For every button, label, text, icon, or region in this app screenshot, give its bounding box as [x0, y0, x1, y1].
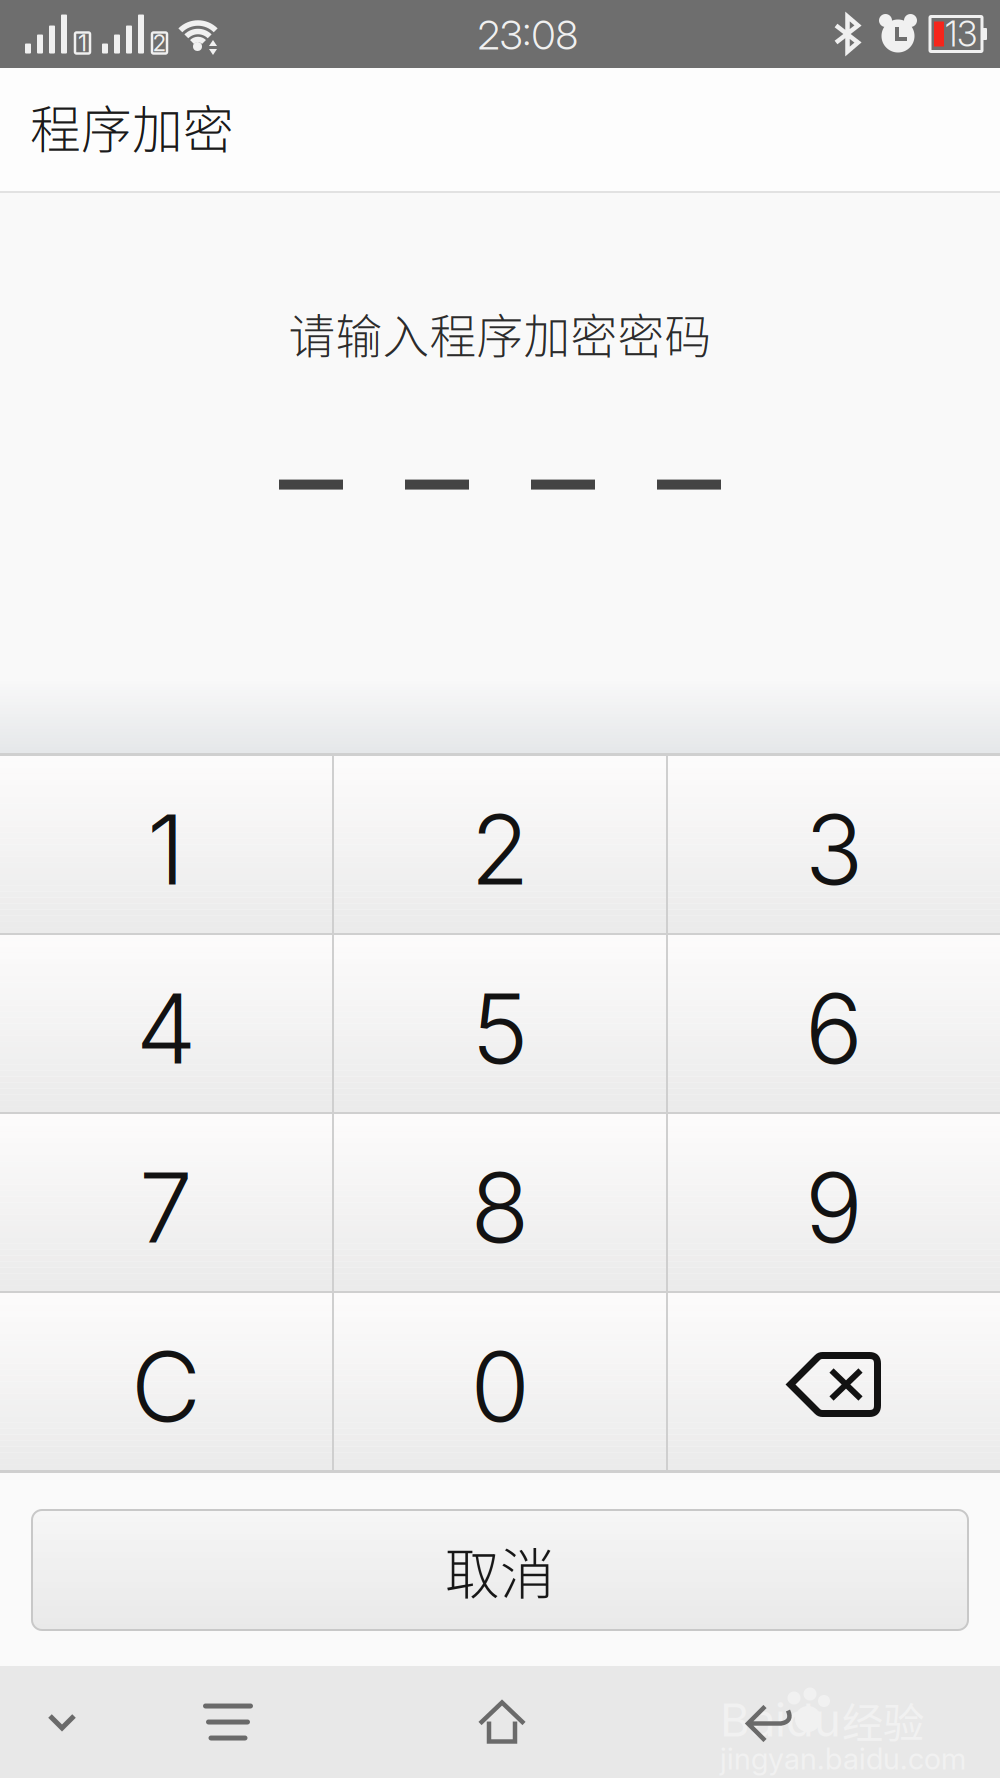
button[interactable]: Hide keyboard [0, 1666, 124, 1778]
button[interactable]: 0 [334, 1293, 666, 1470]
button[interactable]: 2 [334, 756, 666, 933]
staticText: Baidu [720, 1693, 841, 1747]
button[interactable]: 9 [668, 1114, 1000, 1291]
staticText: 6 [805, 970, 863, 1087]
button[interactable]: Menu [124, 1666, 332, 1778]
staticText: 经验 [842, 1690, 924, 1750]
button[interactable]: Back [672, 1666, 868, 1778]
staticText: 13 [945, 13, 977, 55]
staticText: 23:08 [477, 11, 578, 59]
button[interactable]: C [0, 1293, 332, 1470]
button[interactable]: 6 [668, 935, 1000, 1112]
staticText: 请输入程序加密密码 [288, 299, 711, 367]
staticText: 0 [470, 1328, 529, 1445]
button[interactable]: Home [332, 1666, 672, 1778]
button[interactable]: Delete [668, 1293, 1000, 1470]
button[interactable]: 8 [334, 1114, 666, 1291]
staticText: C [131, 1328, 201, 1445]
staticText: 4 [136, 970, 196, 1087]
staticText: 8 [470, 1149, 529, 1266]
button[interactable]: 取消 [32, 1510, 968, 1630]
staticText: 取消 [445, 1530, 555, 1610]
button[interactable]: 4 [0, 935, 332, 1112]
staticText: 1 [78, 29, 87, 57]
staticText: 7 [139, 1149, 193, 1266]
staticText: 2 [152, 29, 166, 57]
button[interactable]: 7 [0, 1114, 332, 1291]
staticText: 3 [805, 791, 863, 908]
staticText: 9 [805, 1149, 863, 1266]
staticText: 5 [471, 970, 528, 1087]
staticText: jingyan.baidu.com [720, 1741, 966, 1776]
button[interactable]: 1 [0, 756, 332, 933]
button[interactable]: 5 [334, 935, 666, 1112]
staticText: 1 [147, 791, 185, 908]
button[interactable]: 3 [668, 756, 1000, 933]
staticText: 2 [470, 791, 529, 908]
staticText: 程序加密 [30, 90, 234, 163]
